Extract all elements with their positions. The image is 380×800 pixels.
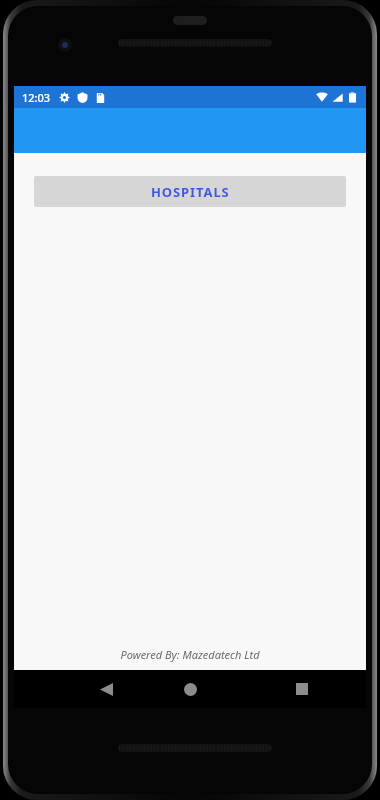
staticText: 12:03	[22, 90, 51, 105]
staticText: HOSPITALS	[151, 183, 230, 201]
staticText: Powered By: Mazedatech Ltd	[14, 647, 366, 662]
button[interactable]: HOSPITALS	[34, 176, 346, 207]
button[interactable]: Back	[82, 670, 130, 708]
button[interactable]: Recent apps	[278, 670, 326, 708]
button[interactable]: Home	[166, 670, 214, 708]
